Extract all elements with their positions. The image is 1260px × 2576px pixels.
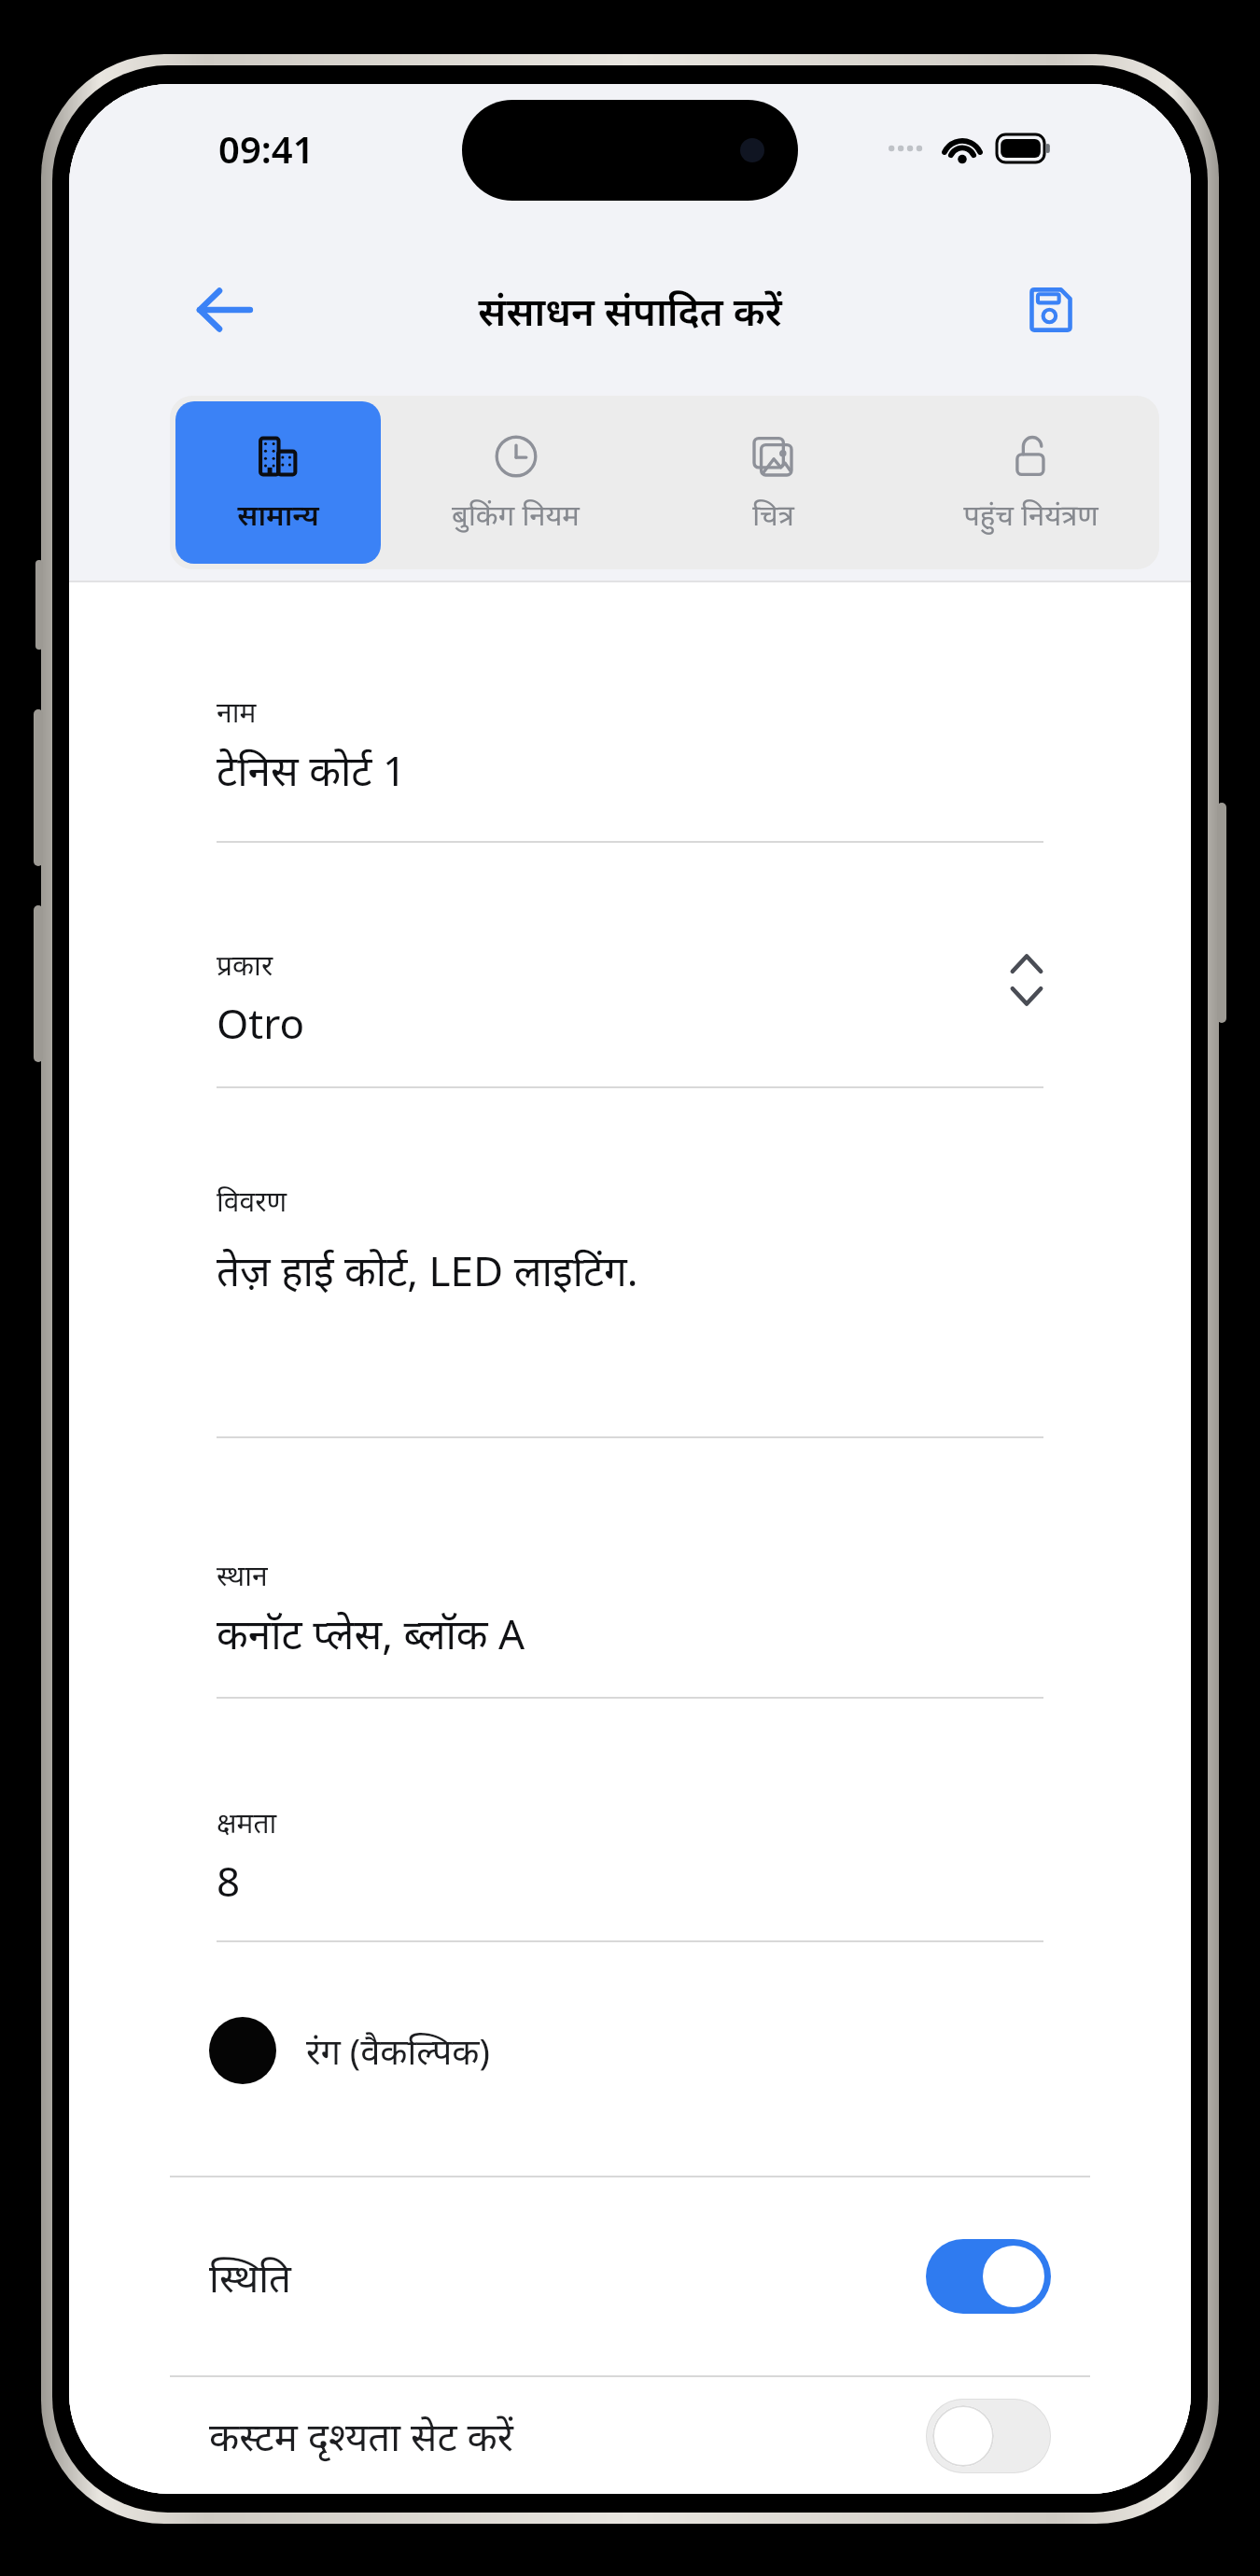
button[interactable]: स्थान	[217, 1556, 1043, 1699]
staticText: विवरण	[217, 1182, 287, 1220]
button[interactable]: स्थिति	[209, 2177, 1051, 2375]
staticText: नाम	[217, 693, 257, 731]
staticText: टेनिस कोर्ट 1	[217, 742, 407, 798]
staticText: 09:41	[218, 123, 315, 174]
button[interactable]: बुकिंग नियम	[386, 396, 644, 569]
staticText: रंग (वैकल्पिक)	[306, 2026, 490, 2075]
staticText: कनॉट प्लेस, ब्लॉक A	[217, 1605, 525, 1661]
staticText: तेज़ हाई कोर्ट, LED लाइटिंग.	[217, 1242, 638, 1298]
staticText: 8	[217, 1853, 241, 1909]
staticText: प्रकार	[217, 945, 273, 984]
staticText: Otro	[217, 995, 305, 1051]
button[interactable]: सामान्य	[175, 401, 381, 564]
button[interactable]: पहुंच नियंत्रण	[902, 396, 1159, 569]
button[interactable]: Back	[179, 265, 269, 355]
staticText: संसाधन संपादित करें	[478, 284, 782, 337]
staticText: स्थिति	[209, 2250, 292, 2303]
button[interactable]: रंग (वैकल्पिक)	[209, 1995, 1051, 2107]
button[interactable]: क्षमता	[217, 1803, 1043, 1942]
button[interactable]: चित्र	[644, 396, 902, 569]
staticText: सामान्य	[237, 495, 319, 534]
staticText: कस्टम दृश्यता सेट करें	[209, 2409, 513, 2462]
staticText: चित्र	[752, 495, 794, 534]
button[interactable]	[926, 2239, 1051, 2314]
button[interactable]: Save	[1008, 267, 1094, 353]
staticText: क्षमता	[217, 1803, 277, 1841]
button[interactable]	[926, 2399, 1051, 2473]
staticText: बुकिंग नियम	[452, 495, 580, 534]
button[interactable]: प्रकार	[217, 945, 1043, 1088]
button[interactable]: कस्टम दृश्यता सेट करें	[209, 2377, 1051, 2494]
staticText: पहुंच नियंत्रण	[963, 495, 1099, 534]
button[interactable]: नाम	[217, 693, 1043, 843]
staticText: स्थान	[217, 1556, 268, 1594]
